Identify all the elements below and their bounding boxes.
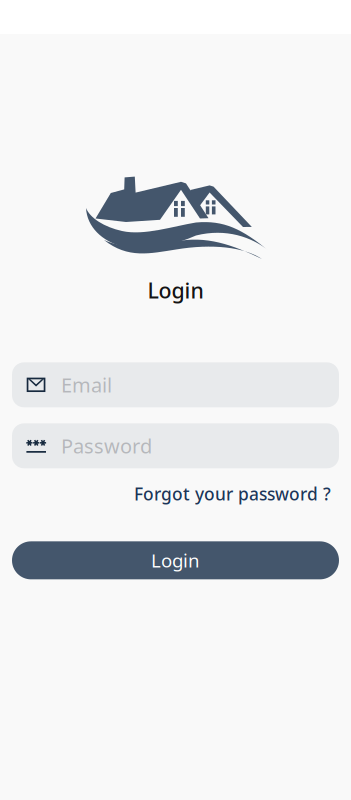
button[interactable]: Login bbox=[12, 541, 339, 579]
button[interactable]: Forgot your password ? bbox=[134, 478, 331, 509]
staticText: Password bbox=[61, 433, 152, 459]
staticText: Email bbox=[61, 372, 112, 398]
staticText: Forgot your password ? bbox=[134, 482, 331, 505]
staticText: Login bbox=[151, 548, 200, 573]
staticText: Login bbox=[147, 276, 203, 304]
